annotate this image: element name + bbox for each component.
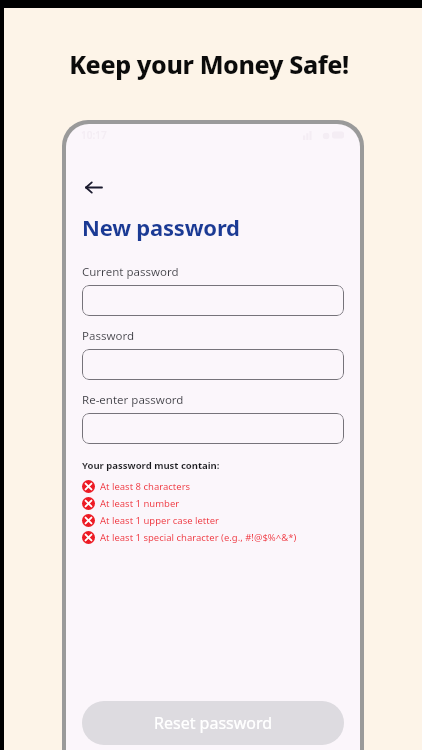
button[interactable]: Back <box>78 172 108 202</box>
staticText: At least 8 characters <box>100 480 191 493</box>
button[interactable]: Reset password <box>82 701 344 745</box>
staticText: Reset password <box>154 712 273 734</box>
staticText: Your password must contain: <box>82 459 220 472</box>
button[interactable] <box>82 349 344 380</box>
staticText: Re-enter password <box>82 392 184 408</box>
staticText: At least 1 upper case letter <box>100 514 219 527</box>
staticText: Password <box>82 328 135 344</box>
staticText: At least 1 number <box>100 497 180 510</box>
staticText: At least 1 special character (e.g., #!@$… <box>100 531 297 544</box>
button[interactable] <box>82 285 344 316</box>
staticText: New password <box>82 212 240 242</box>
staticText: 10:17 <box>81 128 107 142</box>
staticText: Keep your Money Safe! <box>10 47 408 81</box>
staticText: Current password <box>82 264 179 280</box>
button[interactable] <box>82 413 344 444</box>
